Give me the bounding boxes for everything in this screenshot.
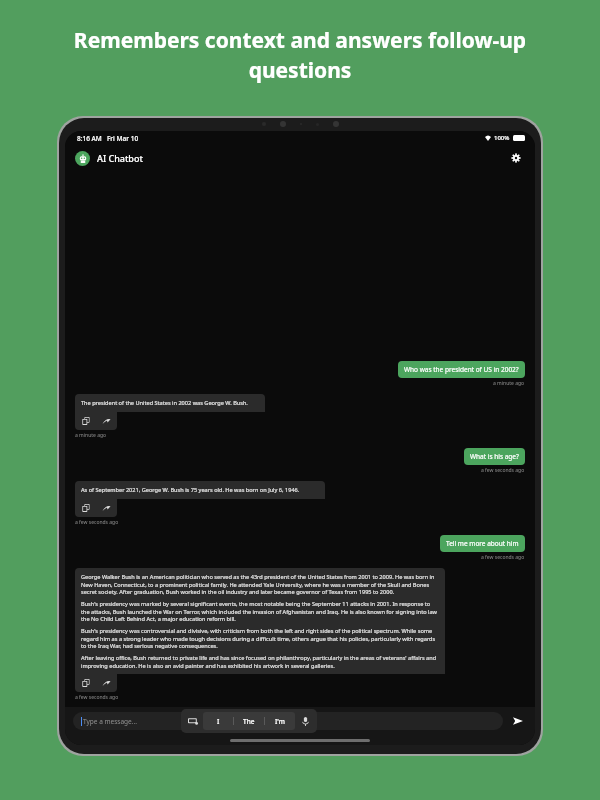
button[interactable]: Share bbox=[101, 416, 111, 426]
staticText: The president of the United States in 20… bbox=[81, 399, 248, 407]
button[interactable]: Copy bbox=[81, 416, 91, 426]
button[interactable]: Who was the president of US in 2002? bbox=[398, 361, 525, 378]
button[interactable]: Copy bbox=[81, 678, 91, 688]
button[interactable]: I bbox=[203, 712, 233, 730]
staticText: a few seconds ago bbox=[481, 467, 525, 474]
button[interactable]: As of September 2021, George W. Bush is … bbox=[75, 481, 325, 499]
staticText: Remembers context and answers follow-up … bbox=[50, 26, 550, 84]
staticText: a minute ago bbox=[493, 380, 525, 387]
staticText: a few seconds ago bbox=[75, 694, 119, 701]
staticText: The bbox=[243, 717, 255, 726]
staticText: What is his age? bbox=[470, 452, 519, 461]
button[interactable]: Settings bbox=[507, 149, 525, 167]
button[interactable]: I'm bbox=[265, 712, 295, 730]
staticText: I bbox=[217, 717, 220, 726]
staticText: Tell me more about him bbox=[446, 539, 519, 548]
button[interactable]: George Walker Bush is an American politi… bbox=[75, 568, 445, 674]
button[interactable]: Copy bbox=[81, 503, 91, 513]
button[interactable]: Tell me more about him bbox=[440, 535, 525, 552]
staticText: Who was the president of US in 2002? bbox=[404, 365, 519, 374]
staticText: AI Chatbot bbox=[97, 152, 143, 164]
staticText: Bush's presidency was controversial and … bbox=[81, 627, 439, 649]
staticText: I'm bbox=[275, 717, 285, 726]
staticText: 8:16 AM Fri Mar 10 bbox=[77, 134, 139, 143]
staticText: a minute ago bbox=[75, 432, 107, 439]
staticText: As of September 2021, George W. Bush is … bbox=[81, 486, 300, 494]
staticText: Bush's presidency was marked by several … bbox=[81, 600, 439, 622]
button[interactable]: What is his age? bbox=[464, 448, 525, 465]
button[interactable]: Keyboard settings bbox=[186, 714, 200, 728]
button[interactable]: The president of the United States in 20… bbox=[75, 394, 265, 412]
staticText: a few seconds ago bbox=[75, 519, 119, 526]
button[interactable]: Voice input bbox=[298, 714, 312, 728]
staticText: George Walker Bush is an American politi… bbox=[81, 573, 439, 595]
button[interactable]: Share bbox=[101, 503, 111, 513]
staticText: After leaving office, Bush returned to p… bbox=[81, 654, 439, 669]
staticText: Type a message... bbox=[83, 717, 137, 726]
button[interactable]: The bbox=[234, 712, 264, 730]
button[interactable]: Share bbox=[101, 678, 111, 688]
button[interactable]: Send bbox=[509, 712, 527, 730]
button[interactable]: Type a message... bbox=[73, 712, 503, 730]
staticText: a few seconds ago bbox=[481, 554, 525, 561]
staticText: 100% bbox=[494, 134, 510, 142]
